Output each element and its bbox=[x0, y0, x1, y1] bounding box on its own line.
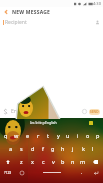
staticText: d bbox=[31, 145, 35, 152]
staticText: English bbox=[45, 120, 57, 125]
button[interactable]: Shift bbox=[0, 156, 16, 167]
staticText: v bbox=[52, 158, 55, 165]
button[interactable]: Back bbox=[0, 7, 12, 17]
button[interactable]: ?123 bbox=[0, 168, 16, 177]
button[interactable]: o bbox=[83, 130, 93, 141]
button[interactable]: Choose contact bbox=[92, 17, 103, 28]
staticText: z bbox=[20, 158, 23, 165]
staticText: i bbox=[77, 132, 79, 139]
staticText: SEND bbox=[90, 110, 99, 114]
button[interactable]: r bbox=[33, 130, 43, 141]
staticText: o bbox=[86, 132, 90, 139]
button[interactable]: s bbox=[16, 143, 27, 154]
button[interactable]: Enter bbox=[88, 168, 103, 177]
button[interactable]: m bbox=[78, 156, 88, 167]
button[interactable]: u bbox=[63, 130, 73, 141]
staticText: n bbox=[71, 158, 75, 165]
staticText: k bbox=[82, 145, 85, 152]
staticText: q bbox=[4, 132, 8, 139]
button[interactable]: p bbox=[93, 130, 103, 141]
staticText: x bbox=[31, 158, 34, 165]
staticText: l bbox=[92, 145, 94, 152]
staticText: b bbox=[61, 158, 65, 165]
button[interactable]: i bbox=[73, 130, 83, 141]
button[interactable]: . bbox=[76, 168, 88, 177]
button[interactable]: l bbox=[88, 143, 98, 154]
button[interactable]: k bbox=[78, 143, 88, 154]
button[interactable]: z bbox=[16, 156, 27, 167]
staticText: Enter message bbox=[11, 108, 46, 115]
staticText: a bbox=[9, 145, 13, 152]
button[interactable]: Emoji keyboard bbox=[16, 168, 28, 177]
staticText: Ans Settings bbox=[30, 121, 46, 125]
staticText: h bbox=[61, 145, 65, 152]
button[interactable]: d bbox=[27, 143, 38, 154]
button[interactable]: v bbox=[48, 156, 58, 167]
staticText: y bbox=[57, 132, 60, 139]
button[interactable]: Theme bbox=[89, 121, 93, 125]
button[interactable]: b bbox=[58, 156, 68, 167]
staticText: s bbox=[20, 145, 23, 152]
staticText: m bbox=[80, 158, 86, 165]
button[interactable]: Space bbox=[28, 168, 76, 177]
staticText: ?123 bbox=[4, 170, 12, 175]
staticText: j bbox=[72, 145, 74, 152]
button[interactable]: c bbox=[38, 156, 48, 167]
button[interactable]: SEND bbox=[89, 109, 100, 115]
staticText: r bbox=[37, 132, 40, 139]
button[interactable]: h bbox=[58, 143, 68, 154]
staticText: p bbox=[96, 132, 100, 139]
button[interactable]: g bbox=[48, 143, 58, 154]
button[interactable]: a bbox=[5, 143, 16, 154]
button[interactable]: w bbox=[11, 130, 22, 141]
staticText: . bbox=[81, 169, 83, 176]
button[interactable]: Attach file bbox=[0, 106, 11, 117]
staticText: c bbox=[42, 158, 45, 165]
button[interactable]: Backspace bbox=[88, 156, 103, 167]
button[interactable]: t bbox=[43, 130, 53, 141]
button[interactable]: q bbox=[0, 130, 11, 141]
button[interactable]: Emoji bbox=[80, 107, 89, 116]
button[interactable]: j bbox=[68, 143, 78, 154]
staticText: Recipient bbox=[5, 19, 27, 26]
button[interactable]: y bbox=[53, 130, 63, 141]
staticText: u bbox=[66, 132, 70, 139]
button[interactable]: e bbox=[22, 130, 33, 141]
staticText: 4:30 bbox=[93, 1, 101, 6]
staticText: t bbox=[47, 132, 49, 139]
staticText: g bbox=[51, 145, 55, 152]
staticText: w bbox=[14, 132, 19, 139]
button[interactable]: n bbox=[68, 156, 78, 167]
staticText: f bbox=[42, 145, 44, 152]
button[interactable]: f bbox=[38, 143, 48, 154]
staticText: NEW MESSAGE bbox=[12, 9, 51, 16]
button[interactable]: x bbox=[27, 156, 38, 167]
staticText: e bbox=[26, 132, 30, 139]
